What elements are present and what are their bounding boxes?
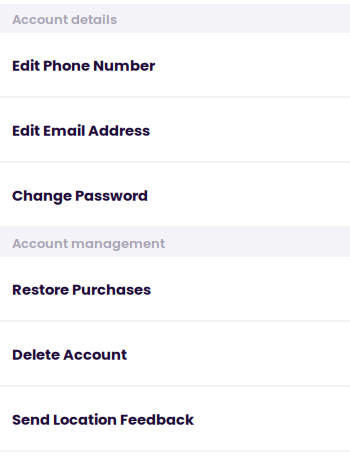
button[interactable]: Delete Account (0, 322, 350, 387)
staticText: Edit Phone Number (12, 55, 155, 76)
staticText: Account details (12, 10, 117, 29)
button[interactable]: Edit Phone Number (0, 33, 350, 98)
button[interactable]: Edit Email Address (0, 98, 350, 163)
button[interactable]: Change Password (0, 163, 350, 228)
staticText: Account management (12, 234, 165, 253)
staticText: Restore Purchases (12, 279, 151, 300)
staticText: Delete Account (12, 344, 127, 365)
staticText: Edit Email Address (12, 120, 150, 141)
button[interactable]: Restore Purchases (0, 257, 350, 322)
staticText: Change Password (12, 185, 148, 206)
staticText: Send Location Feedback (12, 409, 194, 430)
button[interactable]: Send Location Feedback (0, 387, 350, 452)
